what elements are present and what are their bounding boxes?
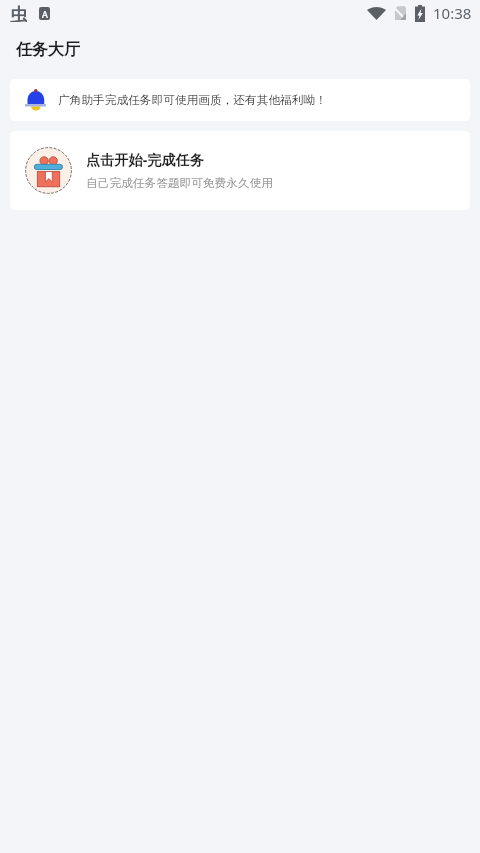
other: Developer notification — [10, 4, 27, 22]
staticText: 自己完成任务答题即可免费永久使用 — [86, 176, 273, 191]
button[interactable]: 点击开始-完成任务 — [10, 131, 470, 210]
staticText: 任务大厅 — [16, 40, 80, 60]
button[interactable]: 广角助手完成任务即可使用画质，还有其他福利呦！ — [10, 79, 470, 121]
staticText: 10:38 — [433, 3, 472, 23]
staticText: 广角助手完成任务即可使用画质，还有其他福利呦！ — [58, 93, 327, 108]
staticText: A — [42, 8, 48, 20]
staticText: 虫 — [10, 4, 27, 22]
staticText: 点击开始-完成任务 — [86, 150, 205, 169]
